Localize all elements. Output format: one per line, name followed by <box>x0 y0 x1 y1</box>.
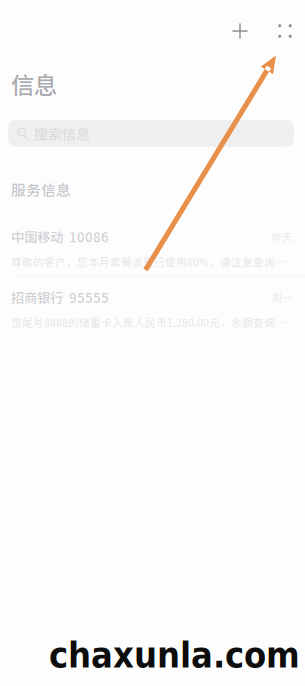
button[interactable]: 中国移动 10086 <box>0 223 305 276</box>
staticText: 搜索信息 <box>34 123 90 143</box>
staticText: 周一 <box>272 290 292 304</box>
staticText: 服务信息 <box>11 179 71 200</box>
button[interactable]: More options <box>272 18 298 44</box>
button[interactable]: New message <box>227 18 253 44</box>
staticText: 尊敬的客户，您本月套餐流量已使用80%，请注意查询余量… <box>11 254 292 269</box>
staticText: 昨天 <box>272 229 292 244</box>
staticText: 招商银行 95555 <box>11 288 109 307</box>
button[interactable]: 招商银行 95555 <box>0 284 305 337</box>
staticText: 信息 <box>11 67 57 101</box>
staticText: 中国移动 10086 <box>11 227 109 246</box>
staticText: 您尾号8888的储蓄卡入账人民币1,280.00元，余额查询… <box>11 314 286 330</box>
staticText: chaxunla.com <box>49 634 300 676</box>
